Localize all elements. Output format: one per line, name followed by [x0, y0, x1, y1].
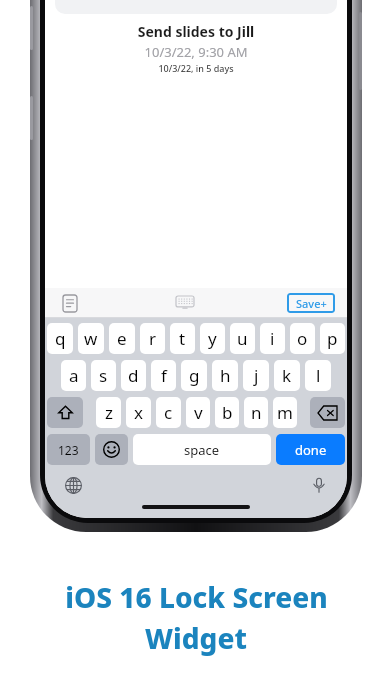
- staticText: x: [134, 401, 143, 424]
- staticText: Save+: [296, 296, 327, 311]
- staticText: p: [327, 327, 338, 350]
- staticText: h: [220, 364, 231, 387]
- button[interactable]: p: [320, 323, 345, 354]
- staticText: a: [69, 364, 79, 387]
- button[interactable]: m: [273, 397, 297, 428]
- button[interactable]: a: [61, 360, 86, 391]
- button[interactable]: u: [230, 323, 255, 354]
- staticText: w: [84, 327, 98, 350]
- button[interactable]: Dictate: [307, 473, 331, 497]
- staticText: Send slides to Jill: [45, 22, 347, 41]
- staticText: m: [277, 401, 293, 424]
- staticText: done: [295, 441, 327, 459]
- button[interactable]: h: [212, 360, 238, 391]
- staticText: u: [237, 327, 248, 350]
- staticText: n: [251, 401, 262, 424]
- button[interactable]: Save+: [287, 293, 335, 313]
- staticText: b: [222, 401, 233, 424]
- button[interactable]: 123: [47, 434, 90, 465]
- button[interactable]: y: [200, 323, 225, 354]
- staticText: q: [55, 327, 66, 350]
- button[interactable]: s: [91, 360, 116, 391]
- button[interactable]: Notes: [57, 290, 83, 316]
- button[interactable]: d: [121, 360, 146, 391]
- staticText: z: [105, 401, 113, 424]
- button[interactable]: j: [243, 360, 269, 391]
- staticText: v: [194, 401, 203, 424]
- button[interactable]: r: [140, 323, 165, 354]
- staticText: t: [179, 327, 186, 350]
- button[interactable]: t: [170, 323, 195, 354]
- staticText: g: [189, 364, 200, 387]
- button[interactable]: i: [260, 323, 285, 354]
- button[interactable]: x: [126, 397, 151, 428]
- staticText: r: [149, 327, 157, 350]
- button[interactable]: l: [305, 360, 331, 391]
- staticText: d: [128, 364, 139, 387]
- staticText: o: [297, 327, 308, 350]
- staticText: Widget: [145, 619, 247, 657]
- button[interactable]: Backspace: [310, 397, 345, 428]
- staticText: l: [316, 364, 321, 387]
- staticText: 10/3/22, 9:30 AM: [45, 43, 347, 61]
- staticText: iOS 16 Lock Screen: [65, 578, 328, 616]
- button[interactable]: c: [156, 397, 181, 428]
- staticText: i: [270, 327, 275, 350]
- staticText: 123: [58, 442, 79, 458]
- button[interactable]: n: [244, 397, 268, 428]
- button[interactable]: done: [276, 434, 345, 465]
- button[interactable]: o: [290, 323, 315, 354]
- button[interactable]: Keyboard: [172, 290, 198, 316]
- button[interactable]: b: [215, 397, 239, 428]
- staticText: j: [254, 364, 259, 387]
- button[interactable]: f: [151, 360, 176, 391]
- button[interactable]: q: [47, 323, 73, 354]
- staticText: k: [282, 364, 292, 387]
- staticText: s: [99, 364, 108, 387]
- button[interactable]: e: [109, 323, 135, 354]
- button[interactable]: space: [133, 434, 271, 465]
- staticText: y: [208, 327, 217, 350]
- staticText: f: [161, 364, 167, 387]
- button[interactable]: w: [78, 323, 104, 354]
- staticText: 10/3/22, in 5 days: [45, 62, 347, 74]
- button[interactable]: Emoji: [95, 434, 128, 465]
- staticText: c: [164, 401, 173, 424]
- button[interactable]: Change keyboard language: [61, 473, 85, 497]
- button[interactable]: g: [181, 360, 207, 391]
- staticText: e: [117, 327, 127, 350]
- staticText: space: [184, 441, 220, 459]
- button[interactable]: v: [186, 397, 210, 428]
- button[interactable]: z: [96, 397, 121, 428]
- button[interactable]: Shift: [47, 397, 83, 428]
- button[interactable]: k: [274, 360, 300, 391]
